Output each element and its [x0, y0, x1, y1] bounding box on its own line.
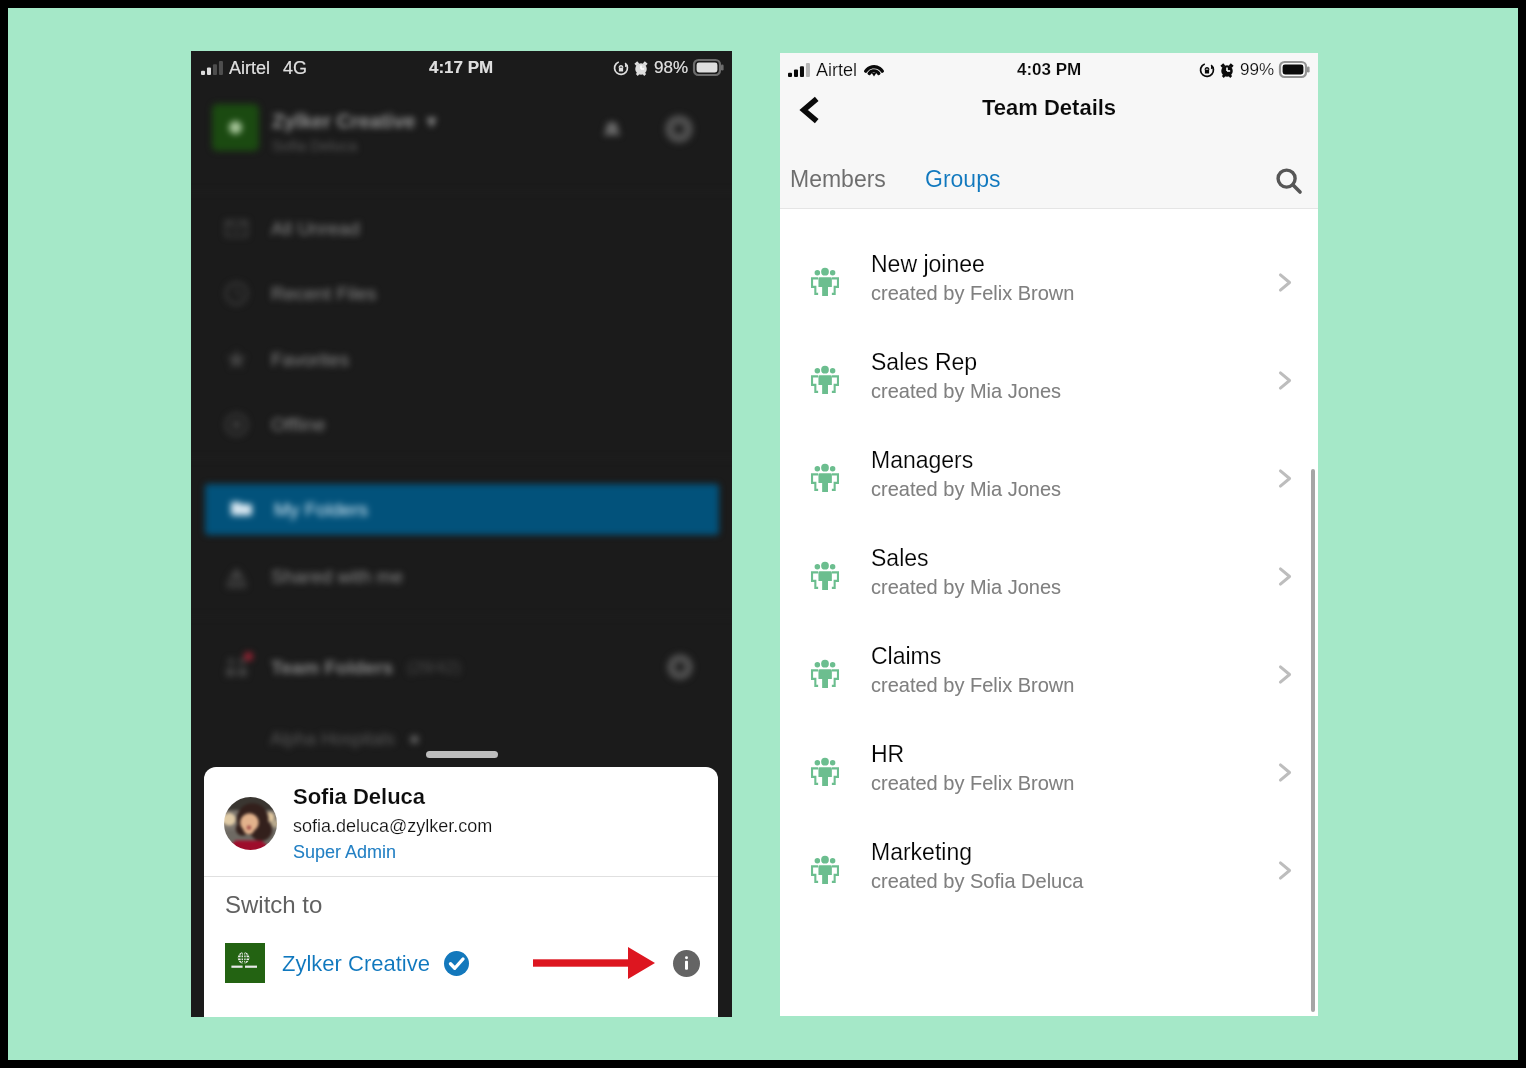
staticText: sofia.deluca@zylker.com	[293, 816, 493, 836]
button[interactable]: New joinee	[780, 228, 1318, 326]
button[interactable]: Shared with me	[191, 554, 732, 598]
staticText: created by Felix Brown	[871, 772, 1075, 794]
staticText: HR	[871, 741, 905, 767]
button[interactable]: Groups	[913, 156, 1011, 202]
staticText: Switch to	[225, 891, 323, 918]
button[interactable]: Zylker Creative	[204, 941, 718, 985]
staticText: 98%	[654, 58, 689, 77]
button[interactable]: Members	[780, 156, 902, 202]
staticText: 4:03 PM	[1017, 60, 1082, 79]
button[interactable]: Notifications	[599, 116, 625, 142]
staticText: created by Felix Brown	[871, 674, 1075, 696]
staticText: Sofia Deluca	[293, 784, 426, 809]
button[interactable]: Sales Rep	[780, 326, 1318, 424]
staticText: Sales	[871, 545, 929, 571]
staticText: Airtel	[816, 60, 858, 80]
staticText: Marketing	[871, 839, 972, 865]
staticText: Managers	[871, 447, 974, 473]
button[interactable]: HR	[780, 718, 1318, 816]
staticText: Zylker Creative	[282, 951, 430, 976]
staticText: Sofia Deluca	[272, 137, 358, 154]
staticText: New joinee	[871, 251, 985, 277]
button[interactable]: Offline	[191, 402, 732, 446]
staticText: Recent Files	[271, 283, 377, 304]
staticText: 99%	[1240, 60, 1275, 79]
staticText: created by Sofia Deluca	[871, 870, 1084, 892]
staticText: Members	[790, 166, 886, 192]
staticText: Offline	[271, 414, 326, 435]
staticText: created by Mia Jones	[871, 380, 1062, 402]
staticText: 4G	[283, 58, 308, 78]
staticText: Team Folders	[271, 657, 394, 678]
button[interactable]: Team Folders	[191, 645, 732, 689]
button[interactable]: Claims	[780, 620, 1318, 718]
button[interactable]: Favorites	[191, 337, 732, 381]
staticText: Alpha Hospitals	[270, 729, 396, 749]
button[interactable]: All Unread	[191, 206, 732, 250]
staticText: created by Mia Jones	[871, 576, 1062, 598]
staticText: Sales Rep	[871, 349, 978, 375]
button[interactable]: Sales	[780, 522, 1318, 620]
staticText: Shared with me	[271, 566, 404, 587]
staticText: Team Details	[982, 95, 1117, 120]
button[interactable]: Managers	[780, 424, 1318, 522]
staticText: 4:17 PM	[429, 58, 494, 77]
staticText: created by Felix Brown	[871, 282, 1075, 304]
staticText: Zylker Creative ▾	[272, 109, 437, 132]
staticText: created by Mia Jones	[871, 478, 1062, 500]
staticText: Airtel	[229, 58, 271, 78]
staticText: All Unread	[271, 218, 360, 239]
button[interactable]: Search	[1266, 158, 1312, 204]
button[interactable]: Alpha Hospitals	[191, 721, 732, 757]
button[interactable]: Info	[673, 950, 700, 977]
button[interactable]: Marketing	[780, 816, 1318, 914]
button[interactable]: Recent Files	[191, 271, 732, 315]
button[interactable]: My Folders	[205, 484, 719, 535]
button[interactable]: Settings	[665, 115, 693, 143]
staticText: Claims	[871, 643, 942, 669]
staticText: Super Admin	[293, 842, 397, 862]
staticText: My Folders	[274, 499, 368, 520]
staticText: Favorites	[271, 349, 350, 370]
staticText: Groups	[925, 166, 1001, 192]
staticText: (29/42)	[407, 658, 461, 677]
button[interactable]: Back	[788, 87, 834, 133]
